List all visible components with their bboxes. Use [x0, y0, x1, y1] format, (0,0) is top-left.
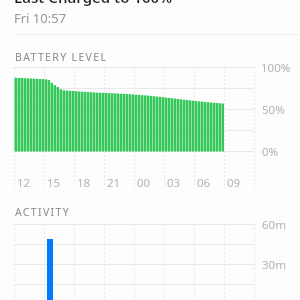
staticText: BATTERY LEVEL — [15, 50, 108, 64]
staticText: 03 — [167, 175, 181, 191]
staticText: 12 — [17, 175, 31, 191]
staticText: 15 — [47, 175, 61, 191]
staticText: Fri 10:57 — [14, 9, 67, 27]
staticText: 21 — [107, 175, 121, 191]
staticText: 50% — [262, 102, 285, 118]
staticText: 18 — [77, 175, 91, 191]
staticText: Last Charged to 100% — [14, 0, 173, 7]
staticText: 100% — [261, 60, 291, 76]
staticText: 30m — [262, 257, 286, 273]
staticText: 60m — [262, 217, 286, 233]
staticText: 06 — [197, 175, 211, 191]
staticText: 0% — [262, 144, 279, 160]
staticText: 09 — [227, 175, 241, 191]
staticText: ACTIVITY — [15, 205, 70, 219]
staticText: 00 — [137, 175, 151, 191]
